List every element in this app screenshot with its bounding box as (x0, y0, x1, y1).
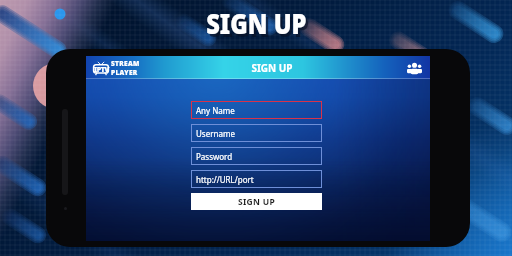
staticText: SIGN UP (238, 196, 276, 208)
staticText: SIGN UP (251, 61, 293, 75)
staticText: STREAM (111, 59, 140, 68)
button[interactable]: Username (191, 124, 322, 142)
button[interactable]: Password (191, 147, 322, 165)
button[interactable]: http://URL/port (191, 170, 322, 188)
button[interactable]: Accounts (404, 58, 424, 78)
staticText: Username (196, 128, 235, 139)
staticText: IPTV (94, 65, 109, 75)
staticText: Any Name (196, 105, 235, 116)
staticText: PLAYER (111, 68, 138, 77)
staticText: http://URL/port (196, 174, 254, 185)
staticText: SIGN UP (206, 4, 307, 42)
button[interactable]: SIGN UP (191, 193, 322, 210)
staticText: Password (196, 151, 233, 162)
button[interactable]: Any Name (191, 101, 322, 119)
staticText: SIGN UP (209, 7, 309, 45)
